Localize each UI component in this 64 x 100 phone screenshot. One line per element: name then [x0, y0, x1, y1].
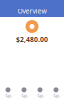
staticText: Tab [37, 93, 43, 99]
staticText: Tab [21, 93, 27, 99]
staticText: Tab [5, 93, 11, 99]
staticText: Tab [53, 93, 59, 99]
staticText: Overview [17, 7, 46, 15]
staticText: $2,480.00 [16, 35, 48, 44]
